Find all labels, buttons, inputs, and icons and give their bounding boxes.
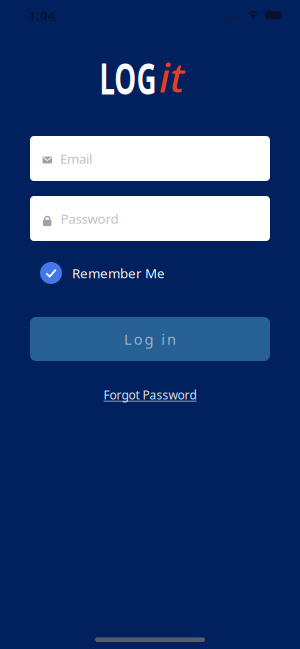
staticText: Log in	[124, 329, 176, 349]
button[interactable]: Password	[30, 196, 270, 241]
staticText: Forgot Password	[103, 387, 196, 403]
staticText: it	[159, 50, 184, 103]
staticText: 1:04	[28, 6, 56, 24]
button[interactable]: Remember Me	[40, 262, 165, 284]
staticText: Remember Me	[72, 264, 165, 282]
staticText: Password	[60, 210, 118, 227]
button[interactable]: Email	[30, 136, 270, 181]
button[interactable]: Log in	[30, 317, 270, 361]
button[interactable]: Forgot Password	[103, 387, 196, 403]
staticText: Email	[60, 150, 92, 167]
staticText: LOG	[84, 50, 172, 106]
